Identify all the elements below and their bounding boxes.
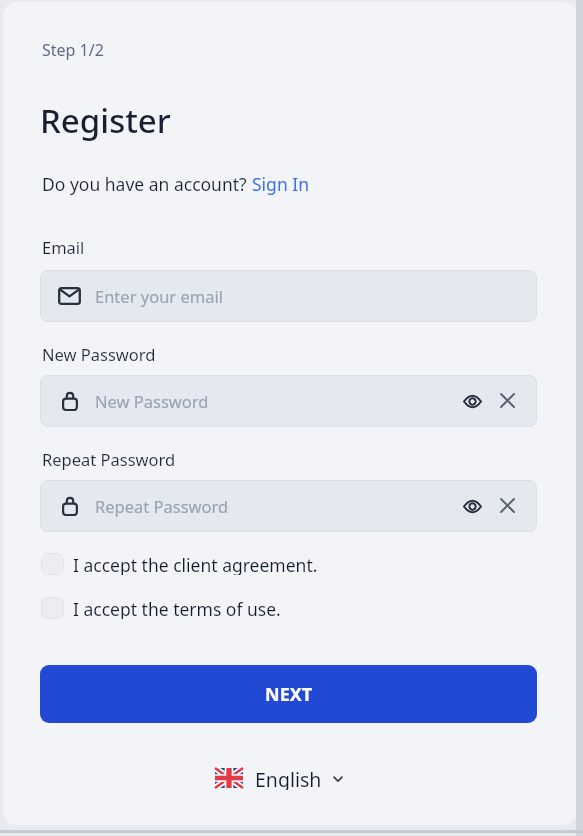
button[interactable]: I accept the client agreement. [41, 553, 318, 575]
staticText: New Password [42, 343, 156, 365]
staticText: I accept the terms of use. [73, 597, 281, 619]
staticText: English [255, 766, 322, 790]
staticText: Register [40, 98, 171, 143]
button[interactable]: English [31, 766, 528, 790]
staticText: New Password [95, 390, 209, 412]
staticText: Step 1/2 [42, 39, 104, 61]
staticText: NEXT [265, 682, 313, 707]
button[interactable]: Sign In [252, 172, 309, 196]
button[interactable]: New Password [40, 375, 537, 427]
button[interactable]: Enter your email [40, 270, 537, 322]
staticText: Repeat Password [42, 448, 176, 470]
button[interactable]: Repeat Password [40, 480, 537, 532]
staticText: Do you have an account? [42, 172, 252, 196]
staticText: Email [42, 236, 85, 258]
button[interactable]: I accept the terms of use. [41, 597, 281, 619]
button[interactable]: NEXT [40, 665, 537, 723]
button[interactable] [500, 393, 515, 408]
button[interactable] [500, 498, 515, 513]
button[interactable] [463, 394, 482, 409]
button[interactable] [463, 499, 482, 514]
staticText: Repeat Password [95, 495, 229, 517]
staticText: I accept the client agreement. [73, 553, 318, 575]
staticText: Enter your email [95, 285, 223, 307]
